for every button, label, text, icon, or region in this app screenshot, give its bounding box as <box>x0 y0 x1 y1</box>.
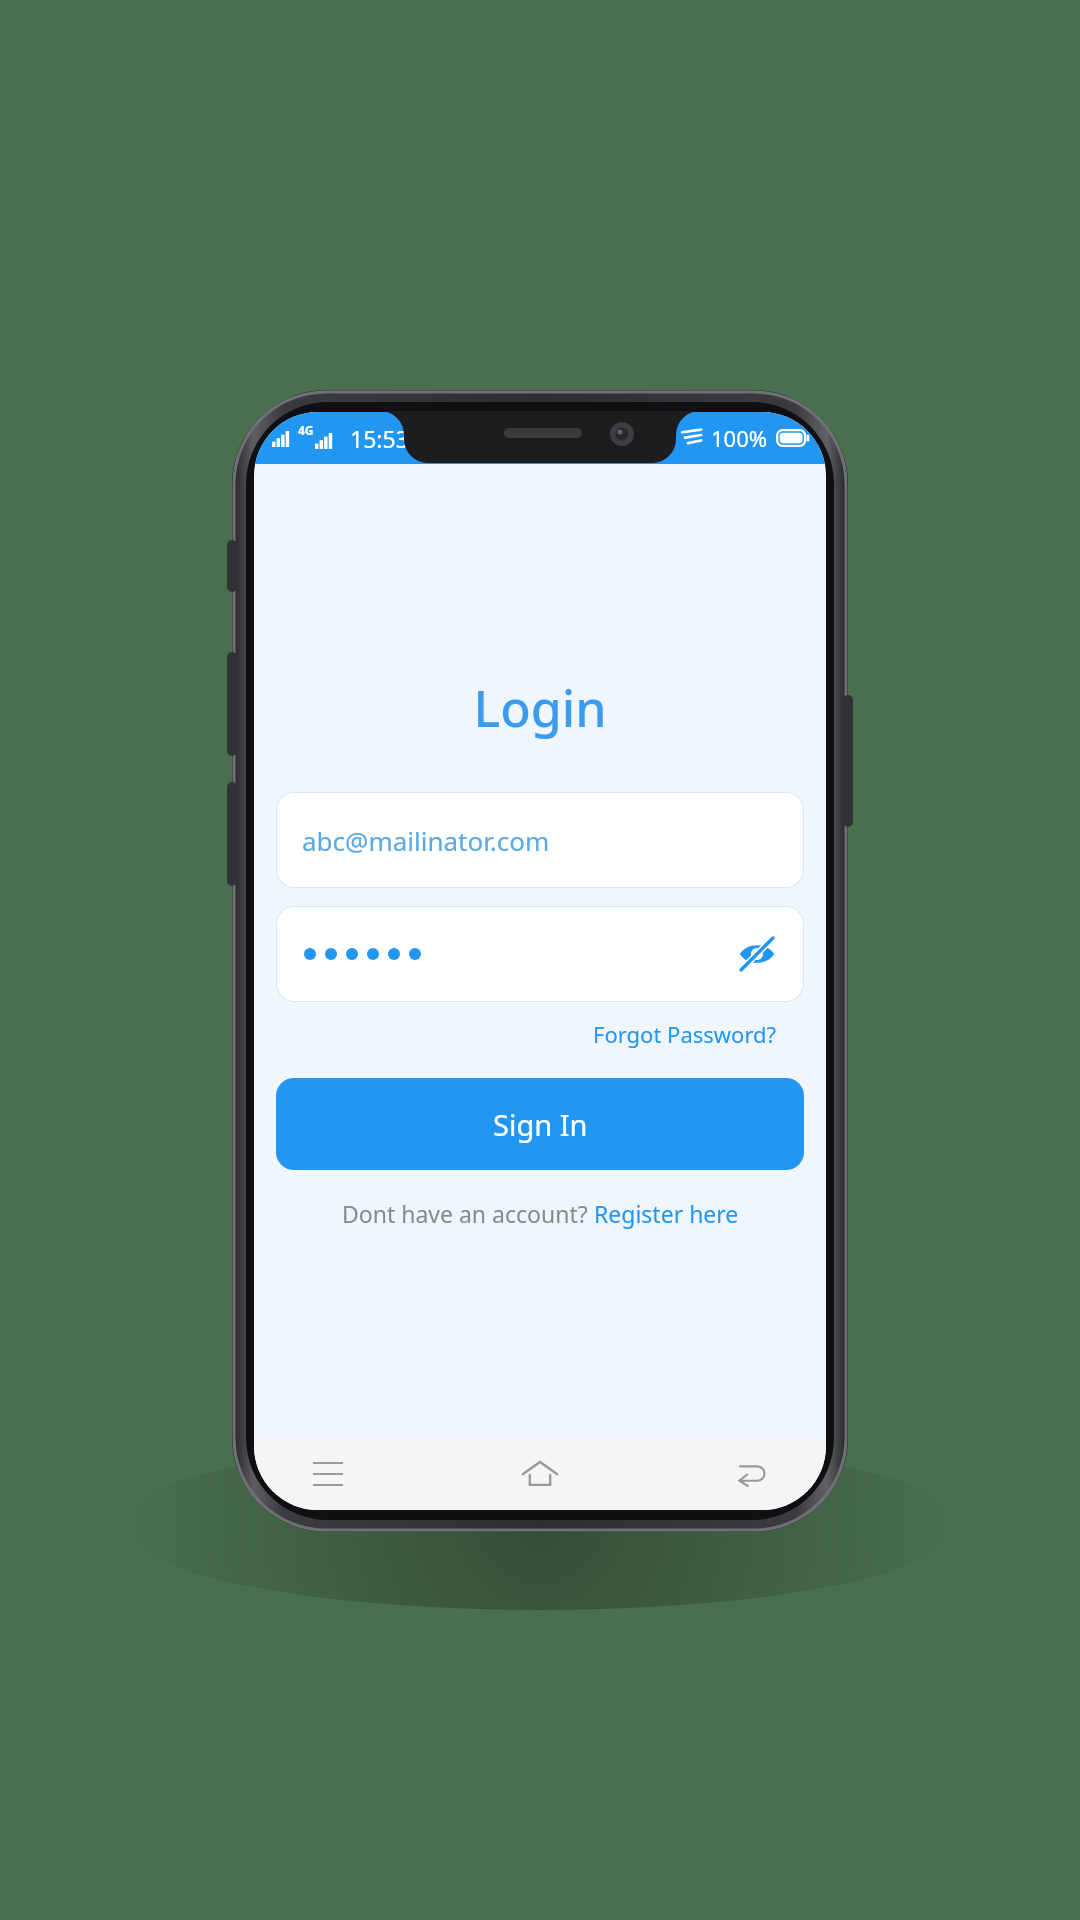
staticText: Register here <box>594 1198 739 1229</box>
staticText: 15:53 <box>350 423 409 454</box>
staticText: Dont have an account? <box>342 1198 594 1229</box>
staticText: 100% <box>711 423 768 453</box>
button[interactable]: Back <box>722 1444 782 1504</box>
staticText: abc@mailinator.com <box>302 823 550 858</box>
button[interactable]: Register here <box>594 1198 739 1229</box>
button[interactable]: abc@mailinator.com <box>276 792 804 888</box>
staticText: Login <box>473 674 607 742</box>
button[interactable]: Hide password <box>276 906 804 1002</box>
button[interactable]: Home <box>510 1444 570 1504</box>
staticText: Forgot Password? <box>593 1019 777 1049</box>
staticText: Sign In <box>493 1105 588 1144</box>
staticText: 4G <box>298 422 314 438</box>
button[interactable]: Sign In <box>276 1078 804 1170</box>
button[interactable]: Forgot Password? <box>590 1016 780 1052</box>
button[interactable]: Hide password <box>730 927 784 981</box>
button[interactable]: Recent apps <box>298 1444 358 1504</box>
